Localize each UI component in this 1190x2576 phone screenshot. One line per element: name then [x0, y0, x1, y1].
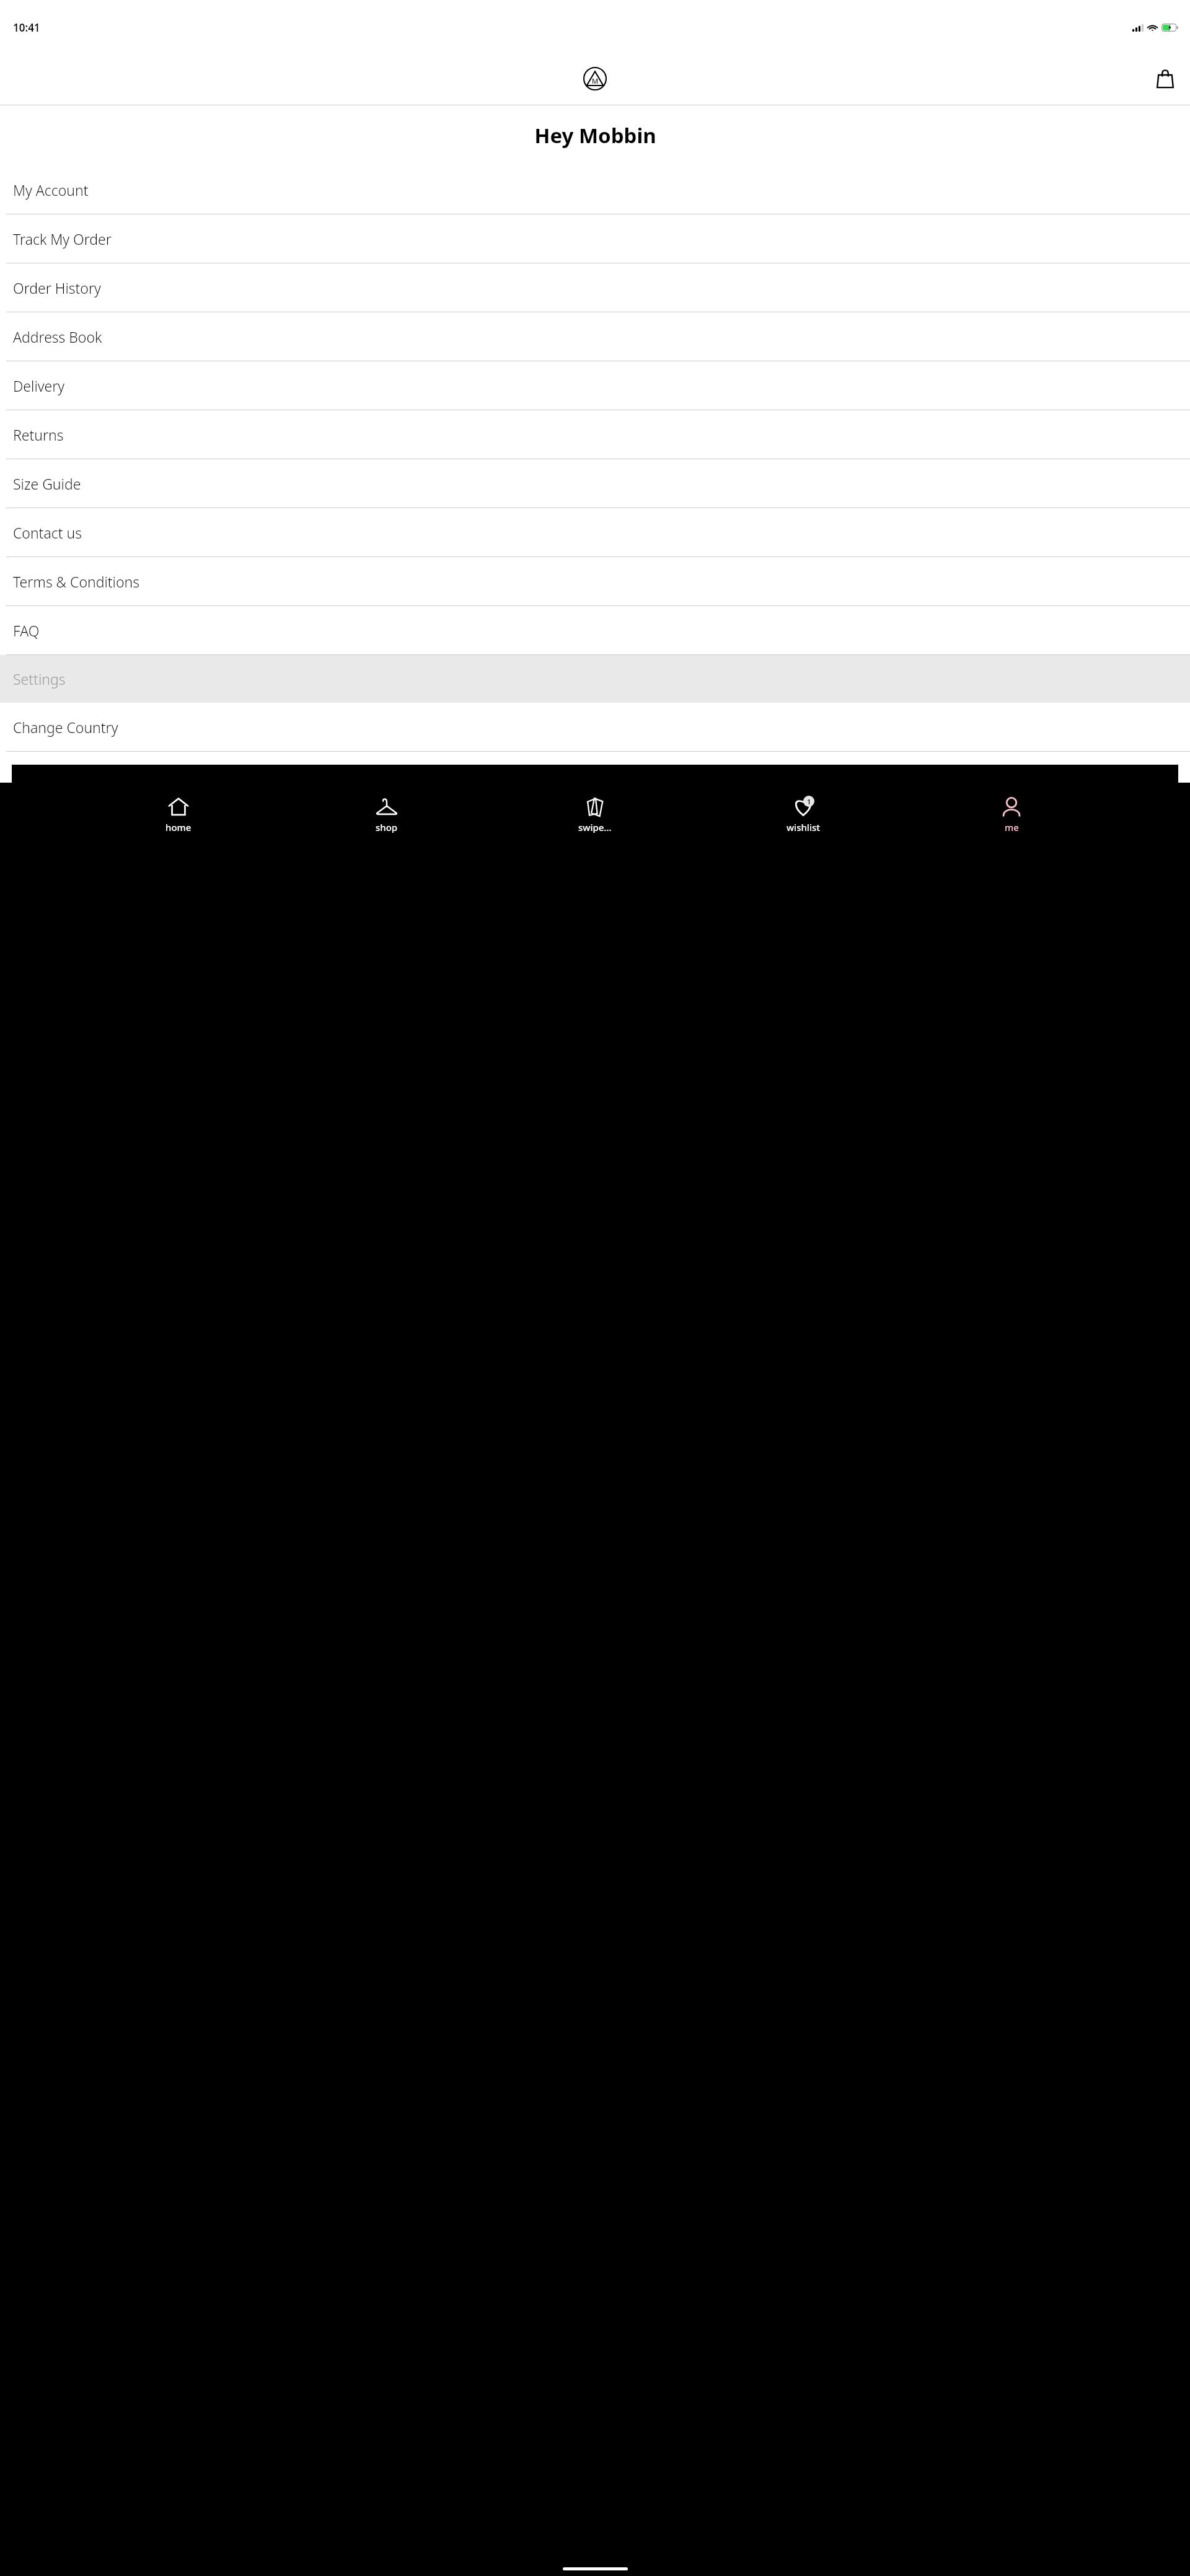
staticText: swipe... — [578, 821, 612, 833]
staticText: Order History — [13, 278, 101, 297]
button[interactable]: me — [982, 783, 1041, 846]
button[interactable]: Change Country — [0, 703, 1190, 752]
staticText: Track My Order — [13, 229, 112, 248]
button[interactable]: Returns — [0, 410, 1190, 459]
button[interactable]: Terms & Conditions — [0, 557, 1190, 606]
button[interactable]: Shopping bag — [1152, 66, 1178, 92]
staticText: shop — [376, 821, 398, 833]
staticText: Address Book — [13, 327, 102, 346]
staticText: Contact us — [13, 523, 82, 542]
button[interactable]: Track My Order — [0, 214, 1190, 263]
button[interactable]: Order History — [0, 263, 1190, 312]
staticText: Settings — [13, 669, 66, 688]
button[interactable]: Delivery — [0, 361, 1190, 410]
staticText: home — [165, 821, 192, 833]
staticText: M — [592, 76, 599, 86]
staticText: wishlist — [787, 821, 820, 833]
button[interactable]: shop — [357, 783, 416, 846]
staticText: My Account — [13, 180, 89, 200]
button[interactable]: swipe... — [565, 783, 625, 846]
staticText: Returns — [13, 425, 64, 444]
staticText: FAQ — [13, 621, 40, 640]
staticText: 10:41 — [13, 20, 40, 35]
button[interactable]: Contact us — [0, 508, 1190, 557]
staticText: 1 — [807, 797, 811, 806]
button[interactable]: Size Guide — [0, 459, 1190, 508]
button[interactable]: FAQ — [0, 606, 1190, 655]
button[interactable]: Home logo — [583, 67, 607, 90]
staticText: Hey Mobbin — [534, 121, 656, 149]
staticText: Change Country — [13, 718, 118, 737]
button[interactable]: My Account — [0, 165, 1190, 214]
staticText: me — [1005, 821, 1019, 833]
button[interactable]: Address Book — [0, 312, 1190, 361]
button[interactable]: 1 — [773, 783, 833, 846]
staticText: Size Guide — [13, 474, 81, 493]
staticText: Delivery — [13, 376, 65, 395]
staticText: Terms & Conditions — [13, 572, 139, 591]
button[interactable]: home — [149, 783, 208, 846]
